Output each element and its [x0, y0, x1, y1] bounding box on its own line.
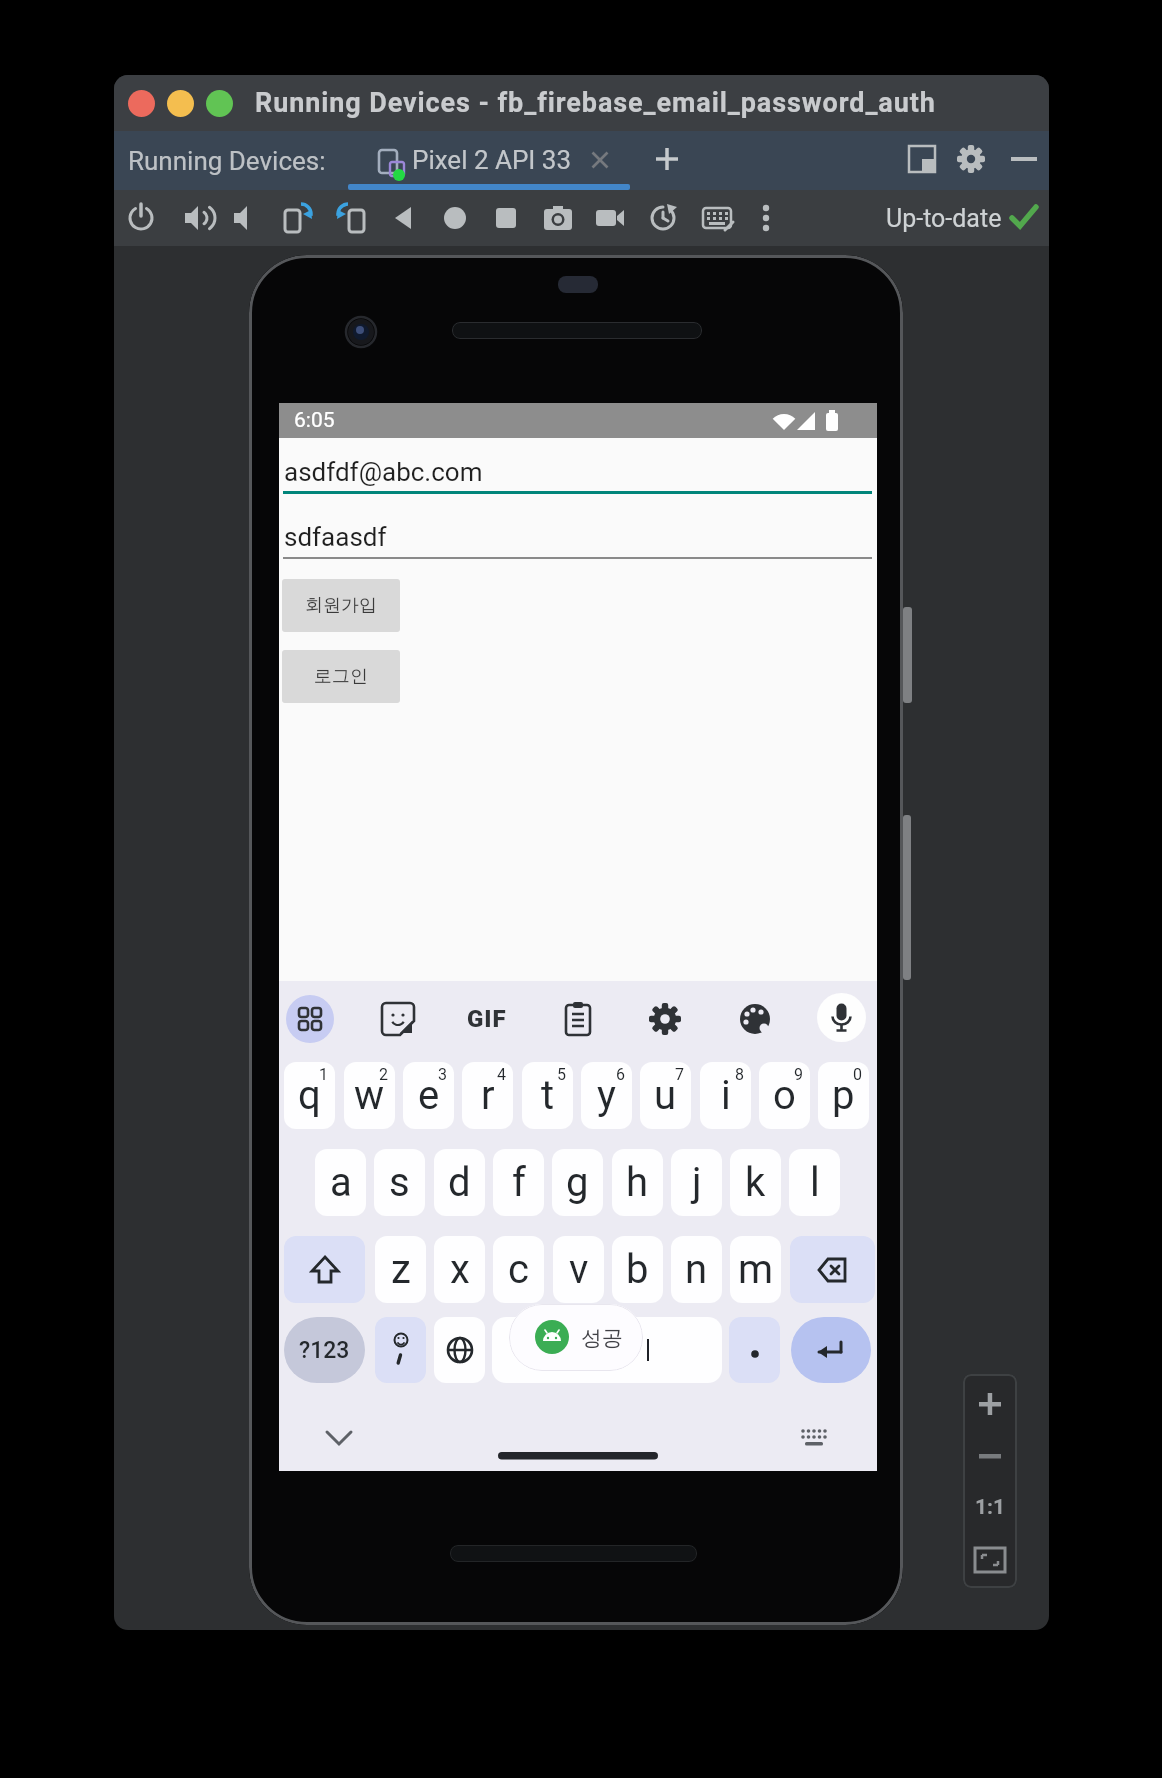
button[interactable]: Pixel 2 API 33: [348, 131, 630, 190]
button[interactable]: [119, 196, 163, 240]
button[interactable]: [790, 1236, 875, 1303]
staticText: w: [354, 1072, 385, 1119]
button[interactable]: f: [493, 1149, 544, 1216]
staticText: q: [298, 1072, 321, 1119]
button[interactable]: [536, 196, 580, 240]
button[interactable]: [731, 995, 779, 1043]
staticText: Up-to-date: [886, 204, 1002, 233]
button[interactable]: [949, 138, 993, 182]
button[interactable]: [286, 995, 334, 1043]
button[interactable]: w: [344, 1062, 395, 1129]
button[interactable]: [433, 196, 477, 240]
staticText: n: [685, 1246, 708, 1293]
button[interactable]: r: [462, 1062, 513, 1129]
staticText: s: [389, 1159, 410, 1206]
staticText: 6:05: [294, 408, 335, 433]
button[interactable]: v: [553, 1236, 604, 1303]
button[interactable]: 로그인: [282, 650, 400, 703]
staticText: f: [512, 1159, 526, 1206]
staticText: 8: [735, 1065, 744, 1084]
button[interactable]: [791, 1317, 871, 1383]
button[interactable]: [330, 196, 374, 240]
button[interactable]: h: [612, 1149, 663, 1216]
button[interactable]: [128, 90, 155, 117]
button[interactable]: g: [552, 1149, 603, 1216]
button[interactable]: [174, 196, 218, 240]
button[interactable]: [641, 995, 689, 1043]
staticText: k: [745, 1159, 766, 1206]
button[interactable]: [645, 138, 689, 182]
staticText: l: [810, 1159, 820, 1206]
button[interactable]: q: [284, 1062, 335, 1129]
staticText: a: [330, 1159, 352, 1206]
button[interactable]: e: [403, 1062, 454, 1129]
button[interactable]: n: [671, 1236, 722, 1303]
button[interactable]: [206, 90, 233, 117]
button[interactable]: a: [315, 1149, 366, 1216]
staticText: 성공: [581, 1325, 623, 1351]
staticText: p: [832, 1072, 855, 1119]
staticText: 1:1: [975, 1495, 1006, 1520]
button[interactable]: [484, 196, 528, 240]
button[interactable]: [588, 196, 632, 240]
staticText: m: [738, 1246, 774, 1293]
button[interactable]: [223, 196, 267, 240]
staticText: 회원가입: [305, 594, 377, 617]
button[interactable]: c: [493, 1236, 544, 1303]
staticText: g: [566, 1159, 589, 1206]
button[interactable]: j: [671, 1149, 722, 1216]
button[interactable]: [1002, 138, 1046, 182]
staticText: y: [597, 1072, 616, 1119]
staticText: z: [391, 1246, 411, 1293]
button[interactable]: y: [581, 1062, 632, 1129]
button[interactable]: [492, 1317, 722, 1383]
staticText: x: [450, 1246, 470, 1293]
button[interactable]: [284, 1236, 365, 1303]
button[interactable]: [434, 1317, 485, 1383]
button[interactable]: k: [730, 1149, 781, 1216]
staticText: j: [692, 1159, 702, 1206]
staticText: 4: [497, 1065, 506, 1084]
button[interactable]: l: [789, 1149, 840, 1216]
button[interactable]: [275, 196, 319, 240]
staticText: 로그인: [314, 665, 368, 688]
button[interactable]: [382, 196, 426, 240]
button[interactable]: [729, 1317, 780, 1383]
button[interactable]: [554, 995, 602, 1043]
button[interactable]: [167, 90, 194, 117]
staticText: 9: [794, 1065, 803, 1084]
button[interactable]: 회원가입: [282, 579, 400, 632]
button[interactable]: b: [612, 1236, 663, 1303]
button[interactable]: ?123: [284, 1317, 365, 1383]
button[interactable]: [695, 196, 739, 240]
button[interactable]: [374, 995, 422, 1043]
button[interactable]: [375, 1317, 426, 1383]
button[interactable]: m: [730, 1236, 781, 1303]
button[interactable]: x: [434, 1236, 485, 1303]
staticText: e: [418, 1072, 440, 1119]
button[interactable]: [900, 138, 944, 182]
staticText: Pixel 2 API 33: [412, 145, 572, 175]
staticText: c: [508, 1246, 529, 1293]
staticText: 2: [379, 1065, 388, 1084]
staticText: d: [448, 1159, 471, 1206]
button[interactable]: s: [374, 1149, 425, 1216]
staticText: 5: [557, 1065, 566, 1084]
button[interactable]: p: [818, 1062, 869, 1129]
staticText: 0: [853, 1065, 862, 1084]
staticText: ?123: [299, 1337, 350, 1364]
button[interactable]: o: [759, 1062, 810, 1129]
button[interactable]: [641, 196, 685, 240]
staticText: v: [569, 1246, 589, 1293]
staticText: Running Devices - fb_firebase_email_pass…: [255, 87, 936, 119]
button[interactable]: d: [434, 1149, 485, 1216]
button[interactable]: [817, 993, 866, 1042]
button[interactable]: t: [522, 1062, 573, 1129]
button[interactable]: i: [700, 1062, 751, 1129]
button[interactable]: z: [375, 1236, 426, 1303]
button[interactable]: [744, 196, 788, 240]
button[interactable]: u: [640, 1062, 691, 1129]
button[interactable]: GIF: [463, 995, 511, 1043]
staticText: GIF: [467, 1005, 507, 1033]
staticText: 3: [438, 1065, 447, 1084]
